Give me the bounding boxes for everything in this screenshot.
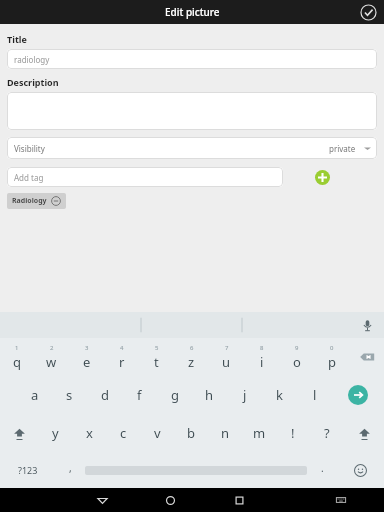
staticText: Visibility (14, 143, 45, 154)
button[interactable]: Add tag (313, 168, 331, 186)
staticText: f (137, 386, 142, 404)
staticText: 3 (85, 344, 89, 352)
staticText: 8 (260, 344, 264, 352)
staticText: s (66, 386, 73, 404)
button[interactable]: 0 (314, 338, 349, 376)
staticText: z (188, 353, 195, 371)
staticText: ?123 (18, 464, 38, 476)
staticText: x (86, 424, 93, 442)
staticText: ! (291, 424, 295, 442)
button[interactable] (7, 92, 377, 130)
staticText: m (253, 424, 266, 442)
button[interactable]: n (208, 414, 242, 452)
button[interactable]: Home (136, 488, 205, 512)
staticText: 7 (225, 344, 229, 352)
button[interactable]: ! (276, 414, 310, 452)
button[interactable]: l (297, 376, 332, 414)
button[interactable]: 9 (279, 338, 314, 376)
button[interactable]: Backspace (349, 338, 384, 376)
button[interactable]: x (72, 414, 106, 452)
button[interactable]: ? (310, 414, 344, 452)
staticText: v (154, 424, 161, 442)
button[interactable]: 1 (0, 338, 34, 376)
button[interactable]: Save (358, 2, 378, 22)
staticText: 9 (295, 344, 299, 352)
staticText: 2 (50, 344, 54, 352)
button[interactable]: Recents (205, 488, 274, 512)
staticText: w (46, 353, 57, 371)
button[interactable]: 2 (34, 338, 69, 376)
staticText: e (83, 353, 91, 371)
staticText: private (329, 143, 356, 154)
staticText: j (243, 386, 247, 404)
button[interactable]: Shift (0, 414, 39, 452)
button[interactable]: k (262, 376, 297, 414)
staticText: i (260, 353, 264, 371)
button[interactable]: c (106, 414, 140, 452)
button[interactable]: ?123 (0, 452, 55, 488)
button[interactable]: Shift (344, 414, 384, 452)
staticText: Edit picture (165, 5, 220, 19)
staticText: 1 (15, 344, 19, 352)
staticText: p (328, 353, 336, 371)
button[interactable]: radiology (7, 49, 377, 69)
button[interactable]: Visibility (7, 137, 377, 159)
staticText: Description (7, 76, 59, 88)
button[interactable]: 6 (174, 338, 209, 376)
button[interactable]: s (52, 376, 87, 414)
button[interactable]: 4 (104, 338, 139, 376)
staticText: y (52, 424, 59, 442)
button[interactable]: a (17, 376, 52, 414)
button[interactable]: v (140, 414, 174, 452)
button[interactable]: d (87, 376, 122, 414)
staticText: c (120, 424, 127, 442)
button[interactable]: Radiology (7, 193, 66, 209)
staticText: q (13, 353, 21, 371)
staticText: o (293, 353, 301, 371)
staticText: l (313, 386, 317, 404)
staticText: Radiology (12, 196, 47, 206)
staticText: k (276, 386, 283, 404)
button[interactable]: , (55, 452, 85, 488)
button[interactable]: Add tag (7, 167, 283, 187)
button[interactable]: 3 (69, 338, 104, 376)
button[interactable]: h (192, 376, 227, 414)
staticText: h (205, 386, 214, 404)
staticText: 6 (190, 344, 194, 352)
button[interactable]: j (227, 376, 262, 414)
staticText: 5 (155, 344, 159, 352)
staticText: b (187, 424, 195, 442)
staticText: 0 (330, 344, 334, 352)
button[interactable]: Enter (332, 376, 384, 414)
staticText: n (221, 424, 230, 442)
button[interactable]: y (39, 414, 72, 452)
staticText: . (321, 461, 324, 475)
staticText: u (222, 353, 231, 371)
staticText: , (69, 461, 72, 475)
staticText: a (31, 386, 39, 404)
button[interactable]: . (307, 452, 337, 488)
button[interactable]: 8 (244, 338, 279, 376)
staticText: t (154, 353, 159, 371)
staticText: ? (324, 424, 330, 442)
button[interactable]: 7 (209, 338, 244, 376)
button[interactable]: Back (68, 488, 136, 512)
staticText: Title (7, 33, 27, 45)
button[interactable]: Hide keyboard (312, 488, 370, 512)
staticText: radiology (14, 54, 50, 65)
button[interactable]: m (242, 414, 276, 452)
button[interactable]: Emoji (337, 452, 384, 488)
button[interactable]: f (122, 376, 157, 414)
button[interactable]: g (157, 376, 192, 414)
button[interactable]: Voice input (358, 316, 376, 334)
staticText: d (101, 386, 109, 404)
staticText: 4 (120, 344, 124, 352)
button[interactable]: 5 (139, 338, 174, 376)
button[interactable] (85, 452, 307, 488)
staticText: r (119, 353, 125, 371)
staticText: g (171, 386, 179, 404)
button[interactable]: b (174, 414, 208, 452)
staticText: Add tag (14, 172, 44, 183)
